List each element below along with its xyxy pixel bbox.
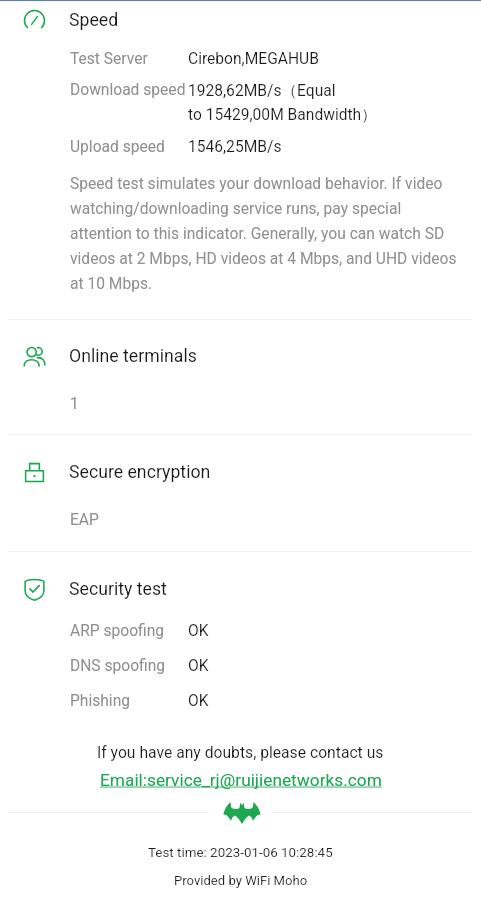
staticText: ARP spoofing bbox=[70, 622, 165, 640]
staticText: 1 bbox=[70, 395, 79, 413]
button[interactable]: Secure encryption bbox=[0, 458, 481, 486]
staticText: 1928,62MB/s（Equal to 15429,00M Bandwidth… bbox=[188, 81, 377, 125]
staticText: EAP bbox=[70, 511, 99, 529]
button[interactable]: Speed bbox=[0, 6, 481, 34]
staticText: Upload speed bbox=[70, 138, 165, 156]
staticText: Online terminals bbox=[69, 346, 197, 367]
staticText: OK bbox=[188, 657, 209, 675]
staticText: OK bbox=[188, 692, 209, 710]
staticText: Cirebon,MEGAHUB bbox=[188, 50, 319, 68]
staticText: Speed bbox=[69, 10, 119, 31]
staticText: Provided by WiFi Moho bbox=[174, 873, 308, 888]
staticText: Test time: 2023-01-06 10:28:45 bbox=[148, 845, 333, 861]
staticText: Email:service_rj@ruijienetworks.com bbox=[100, 770, 382, 790]
staticText: OK bbox=[188, 622, 209, 640]
staticText: DNS spoofing bbox=[70, 657, 166, 675]
staticText: Test Server bbox=[70, 50, 148, 68]
button[interactable]: Email:service_rj@ruijienetworks.com bbox=[100, 770, 382, 790]
staticText: Speed test simulates your download behav… bbox=[70, 175, 462, 293]
button[interactable]: Security test bbox=[0, 575, 481, 603]
staticText: 1546,25MB/s bbox=[188, 138, 282, 156]
staticText: Phishing bbox=[70, 692, 131, 710]
staticText: If you have any doubts, please contact u… bbox=[97, 743, 384, 761]
staticText: Security test bbox=[69, 579, 167, 600]
staticText: Secure encryption bbox=[69, 462, 211, 483]
staticText: Download speed bbox=[70, 81, 186, 99]
button[interactable]: Online terminals bbox=[0, 342, 481, 370]
